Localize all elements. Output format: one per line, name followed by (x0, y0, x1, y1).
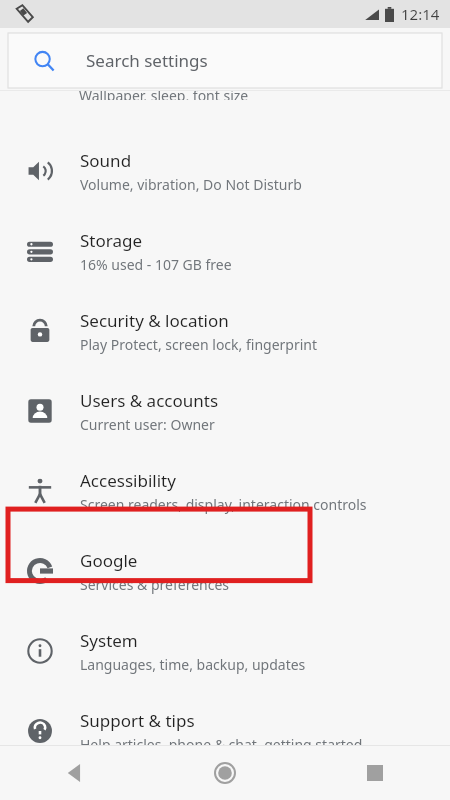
staticText: System (80, 629, 138, 652)
staticText: Sound (80, 149, 132, 172)
button[interactable]: Support & tips (0, 691, 450, 771)
staticText: Users & accounts (80, 389, 219, 412)
button[interactable]: Google (0, 531, 450, 611)
button[interactable]: Storage (0, 211, 450, 291)
button[interactable]: Search settings (8, 33, 442, 88)
button[interactable]: Users & accounts (0, 371, 450, 451)
button[interactable]: System (0, 611, 450, 691)
staticText: Help articles, phone & chat, getting sta… (80, 735, 363, 754)
button[interactable]: Recent apps (300, 745, 450, 800)
staticText: 12:14 (401, 4, 440, 24)
staticText: Security & location (80, 309, 229, 332)
button[interactable]: Accessibility (0, 451, 450, 531)
staticText: 16% used - 107 GB free (80, 255, 232, 274)
staticText: Services & preferences (80, 575, 230, 594)
button[interactable]: Sound (0, 131, 450, 211)
button[interactable]: Home (150, 745, 300, 800)
button[interactable]: Security & location (0, 291, 450, 371)
staticText: Wallpaper, sleep, font size (79, 86, 249, 100)
staticText: Languages, time, backup, updates (80, 655, 306, 674)
staticText: Google (80, 549, 138, 572)
staticText: Accessibility (80, 469, 176, 492)
staticText: Play Protect, screen lock, fingerprint (80, 335, 318, 354)
staticText: Search settings (86, 49, 208, 72)
staticText: Support & tips (80, 709, 195, 732)
staticText: Current user: Owner (80, 415, 215, 434)
staticText: Storage (80, 229, 143, 252)
staticText: Volume, vibration, Do Not Disturb (80, 175, 302, 194)
button[interactable]: Back (0, 745, 150, 800)
staticText: Screen readers, display, interaction con… (80, 495, 367, 514)
